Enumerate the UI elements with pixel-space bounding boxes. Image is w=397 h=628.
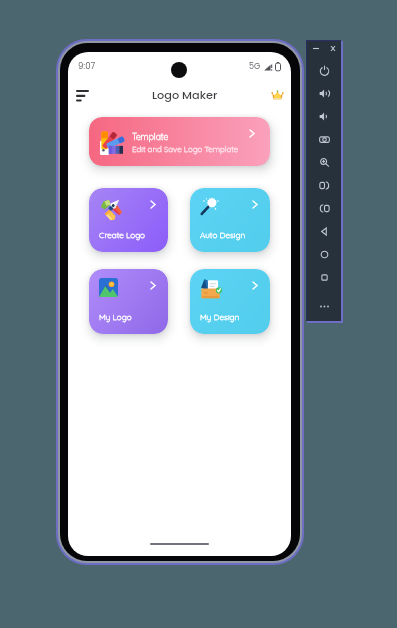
staticText: 5G	[249, 61, 261, 72]
staticText: Create Logo	[99, 230, 146, 240]
button[interactable]: back	[307, 220, 341, 243]
button[interactable]: rotr	[307, 197, 341, 220]
staticText: 9:07	[78, 60, 96, 72]
button[interactable]: Template	[89, 117, 270, 166]
button[interactable]: Create Logo	[89, 188, 168, 252]
button[interactable]: voldown	[307, 105, 341, 128]
button[interactable]: Menu	[70, 83, 94, 107]
button[interactable]: camera	[307, 128, 341, 151]
button[interactable]: volup	[307, 82, 341, 105]
staticText: Logo Maker	[152, 87, 218, 103]
staticText: Auto Design	[200, 230, 246, 240]
button[interactable]: Premium	[268, 86, 286, 104]
button[interactable]: My Design	[190, 269, 270, 334]
button[interactable]: power	[307, 59, 341, 82]
button[interactable]: My Logo	[89, 269, 168, 334]
button[interactable]: zoom	[307, 151, 341, 174]
staticText: My Logo	[99, 312, 132, 322]
staticText: Edit and Save Logo Template	[132, 144, 239, 154]
button[interactable]: recent	[307, 266, 341, 289]
button[interactable]: More	[307, 296, 341, 316]
button[interactable]: rotl	[307, 174, 341, 197]
button[interactable]: Auto Design	[190, 188, 270, 252]
staticText: Template	[132, 131, 169, 142]
button[interactable]: home	[307, 243, 341, 266]
staticText: My Design	[200, 312, 240, 322]
